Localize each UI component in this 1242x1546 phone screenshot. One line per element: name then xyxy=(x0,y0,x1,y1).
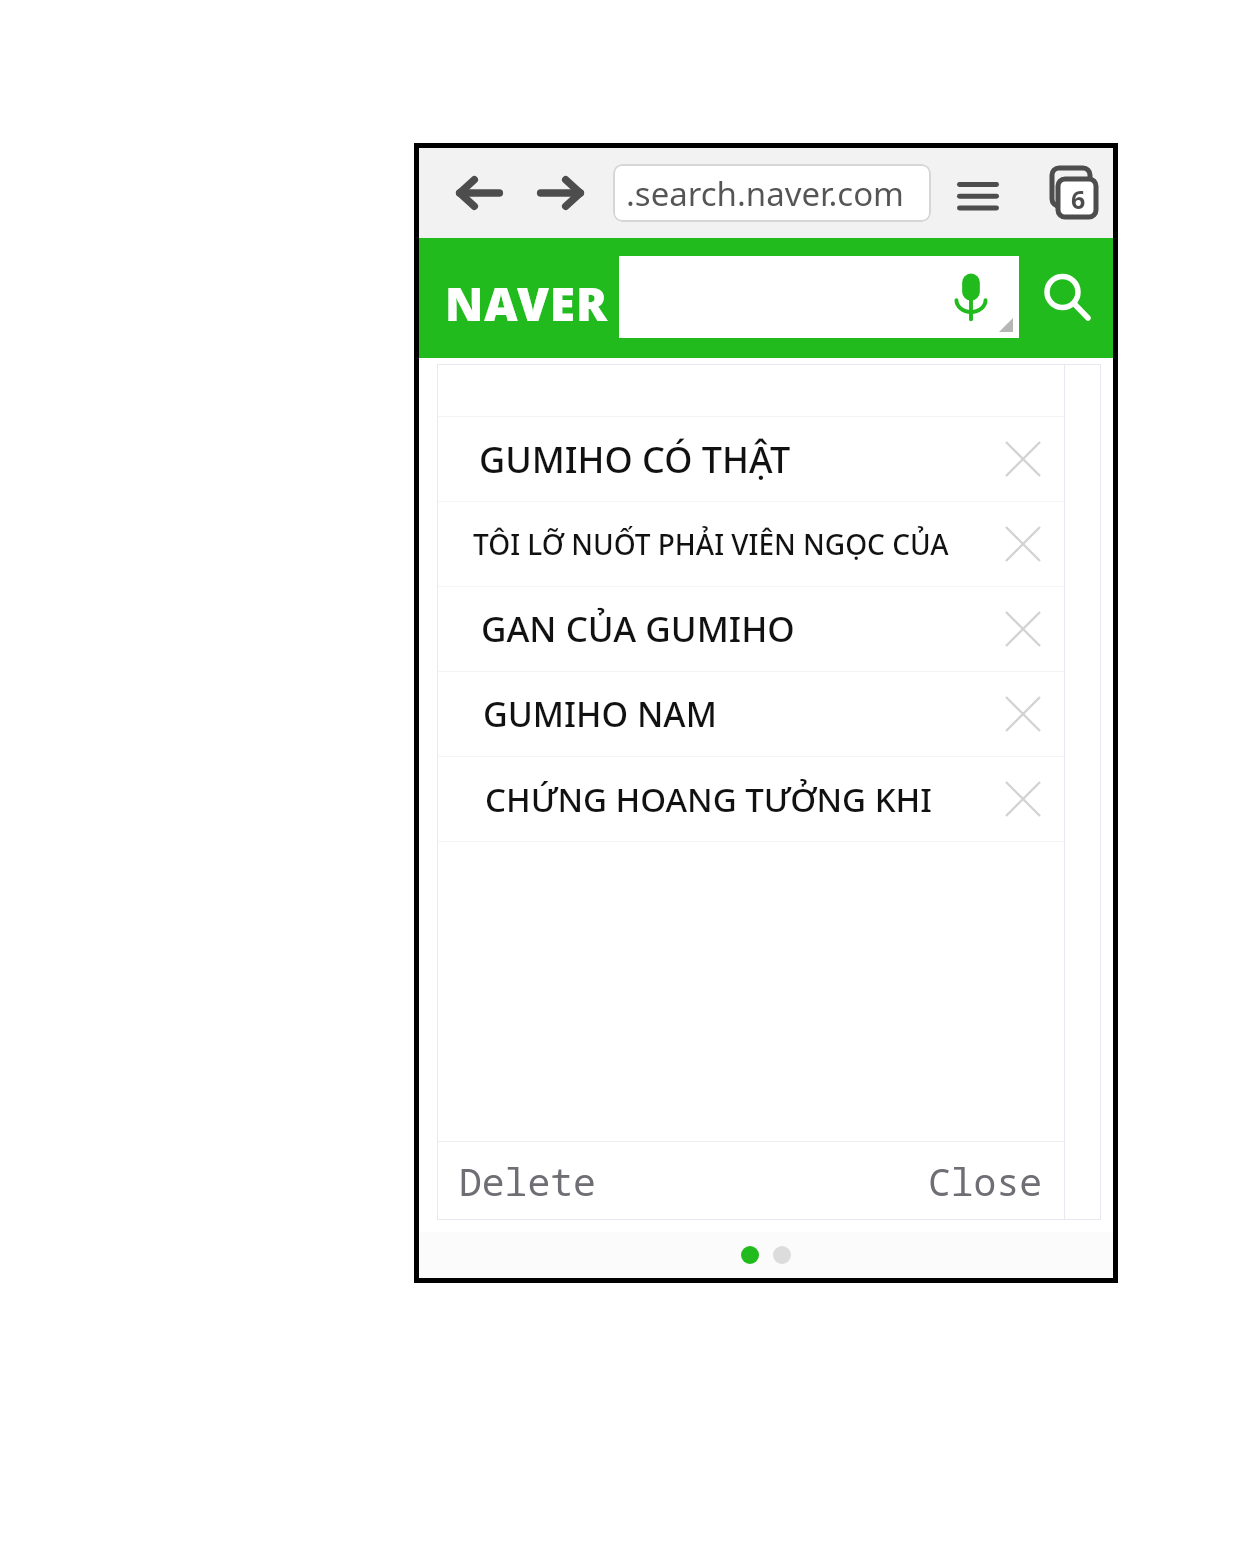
button[interactable]: Remove GUMIHO CÓ THẬT xyxy=(981,417,1065,501)
button[interactable]: Remove GAN CỦA GUMIHO xyxy=(981,587,1065,671)
button[interactable] xyxy=(773,1246,791,1264)
button[interactable]: Voice search xyxy=(619,256,1019,338)
button[interactable]: TÔI LỠ NUỐT PHẢI VIÊN NGỌC CỦA GUMIHO xyxy=(437,502,1065,586)
button[interactable]: Tabs, 6 open xyxy=(1037,158,1107,228)
button[interactable]: Forward xyxy=(527,160,593,226)
button[interactable]: GUMIHO CÓ THẬT xyxy=(437,417,1065,501)
button[interactable]: Back xyxy=(447,160,513,226)
button[interactable]: GUMIHO NAM xyxy=(437,672,1065,756)
staticText: Delete xyxy=(459,1155,596,1207)
button[interactable]: CHỨNG HOANG TƯỞNG KHI SAY xyxy=(437,757,1065,841)
button[interactable]: Voice search xyxy=(945,271,997,323)
staticText: .search.naver.com xyxy=(626,171,904,216)
button[interactable]: Remove TÔI LỠ NUỐT PHẢI VIÊN NGỌC CỦA GU… xyxy=(981,502,1065,586)
button[interactable]: .search.naver.com xyxy=(613,164,931,222)
staticText: GAN CỦA GUMIHO xyxy=(481,605,981,653)
staticText: CHỨNG HOANG TƯỞNG KHI SAY xyxy=(485,777,981,822)
button[interactable]: Search xyxy=(1027,256,1107,338)
staticText: TÔI LỠ NUỐT PHẢI VIÊN NGỌC CỦA GUMIHO xyxy=(473,525,981,563)
staticText: 6 xyxy=(1071,182,1086,216)
button[interactable] xyxy=(741,1246,759,1264)
button[interactable]: Menu xyxy=(947,162,1009,224)
button[interactable]: Remove CHỨNG HOANG TƯỞNG KHI SAY xyxy=(981,757,1065,841)
button[interactable]: NAVER xyxy=(445,272,609,335)
staticText: GUMIHO CÓ THẬT xyxy=(479,435,981,484)
staticText: GUMIHO NAM xyxy=(483,691,981,737)
button[interactable]: GAN CỦA GUMIHO xyxy=(437,587,1065,671)
button[interactable]: Delete xyxy=(437,1142,751,1220)
button[interactable]: Close xyxy=(751,1142,1065,1220)
staticText: Close xyxy=(928,1155,1043,1207)
button[interactable]: Remove GUMIHO NAM xyxy=(981,672,1065,756)
